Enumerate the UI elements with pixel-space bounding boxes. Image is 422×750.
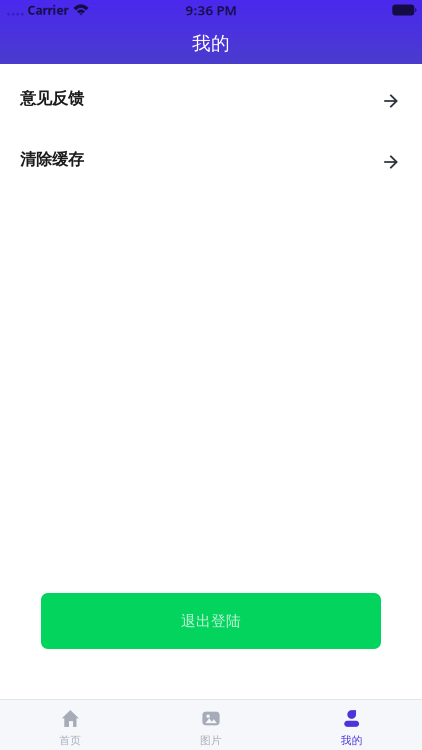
staticText: 退出登陆	[181, 612, 241, 630]
staticText: 图片	[200, 734, 222, 747]
staticText: Carrier	[27, 2, 68, 18]
button[interactable]: 清除缓存	[0, 131, 422, 192]
button[interactable]: 我的	[281, 699, 422, 750]
staticText: 我的	[192, 32, 230, 55]
button[interactable]: 退出登陆	[41, 593, 381, 649]
button[interactable]: 意见反馈	[0, 70, 422, 131]
staticText: 我的	[341, 734, 363, 747]
button[interactable]: 图片	[141, 699, 281, 750]
staticText: 9:36 PM	[185, 1, 236, 19]
button[interactable]: 首页	[0, 699, 141, 750]
staticText: 首页	[59, 734, 81, 747]
staticText: 意见反馈	[20, 89, 84, 108]
staticText: 清除缓存	[20, 150, 84, 169]
